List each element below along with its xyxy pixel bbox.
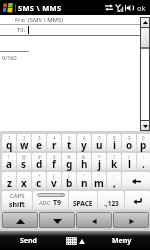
staticText: ABC xyxy=(39,199,51,207)
button[interactable]: Keyboard xyxy=(57,231,93,250)
staticText: % xyxy=(67,154,71,160)
button[interactable]: 2 xyxy=(17,134,31,152)
staticText: m xyxy=(94,176,104,190)
staticText: Til: xyxy=(17,26,26,34)
staticText: " xyxy=(83,173,85,179)
button[interactable]: Scroll up xyxy=(140,17,150,27)
staticText: # xyxy=(38,154,41,160)
staticText: 4 xyxy=(53,135,56,141)
staticText: . xyxy=(142,157,145,171)
staticText: 6 xyxy=(83,135,86,141)
button[interactable]: ) xyxy=(62,172,76,190)
button[interactable]: # xyxy=(32,153,46,171)
button[interactable]: Meny xyxy=(93,231,150,250)
button[interactable]: ! xyxy=(2,153,16,171)
button[interactable]: .,123 xyxy=(98,191,124,211)
button[interactable]: * xyxy=(92,153,106,171)
button[interactable]: ABC xyxy=(33,191,68,211)
button[interactable]: Start xyxy=(1,2,13,13)
staticText: , xyxy=(113,176,116,190)
staticText: * xyxy=(98,154,101,160)
button[interactable]: Send xyxy=(0,231,57,250)
staticText: s xyxy=(21,157,27,171)
staticText: @ xyxy=(22,154,27,160)
button[interactable]: ( xyxy=(47,172,61,190)
staticText: 5 xyxy=(68,135,71,141)
button[interactable]: @ xyxy=(17,153,31,171)
button[interactable]: right xyxy=(113,212,149,228)
button[interactable]: $ xyxy=(47,153,61,171)
button[interactable]: ok xyxy=(137,0,146,15)
button[interactable]: up xyxy=(2,212,38,228)
staticText: $ xyxy=(53,154,56,160)
staticText: : xyxy=(143,154,145,160)
staticText: h xyxy=(81,157,88,171)
staticText: k xyxy=(111,157,118,171)
staticText: SMS \ MMS xyxy=(18,3,62,13)
button[interactable]: & xyxy=(77,153,91,171)
staticText: ; xyxy=(113,173,115,179)
staticText: 0/160 xyxy=(2,54,17,61)
staticText: a xyxy=(6,157,12,171)
staticText: 0 xyxy=(142,135,145,141)
button[interactable]: 8 xyxy=(107,134,121,152)
staticText: q xyxy=(6,138,13,152)
button[interactable] xyxy=(125,191,150,211)
staticText: Meny xyxy=(112,236,132,246)
staticText: o xyxy=(126,138,133,152)
staticText: ok xyxy=(137,3,146,13)
staticText: Fra: xyxy=(15,16,26,24)
staticText: ( xyxy=(53,173,55,179)
button[interactable]: ' xyxy=(92,172,106,190)
button[interactable]: SPACE xyxy=(69,191,97,211)
staticText: e xyxy=(36,138,42,152)
staticText: T9 xyxy=(53,198,62,208)
button[interactable]: left xyxy=(76,212,112,228)
staticText: i xyxy=(113,138,116,152)
button[interactable]: - xyxy=(2,172,16,190)
staticText: 2 xyxy=(23,135,26,141)
button[interactable] xyxy=(122,172,150,190)
staticText: Send xyxy=(20,236,38,246)
button[interactable]: 0 xyxy=(137,134,150,152)
staticText: ' xyxy=(98,173,100,179)
staticText: l xyxy=(128,157,131,171)
staticText: j xyxy=(98,157,101,171)
staticText: b xyxy=(66,176,73,190)
staticText: c xyxy=(36,176,42,190)
staticText: / xyxy=(128,154,130,160)
staticText: f xyxy=(52,157,56,171)
staticText: n xyxy=(81,176,88,190)
staticText: ) xyxy=(68,173,70,179)
staticText: & xyxy=(82,154,86,160)
staticText: - xyxy=(8,173,10,179)
button[interactable]: CAPS xyxy=(2,191,32,211)
button[interactable]: + xyxy=(32,172,46,190)
staticText: w xyxy=(20,138,29,152)
button[interactable]: 5 xyxy=(62,134,76,152)
button[interactable]: ? xyxy=(107,153,121,171)
button[interactable]: / xyxy=(122,153,136,171)
staticText: y xyxy=(81,138,87,152)
button[interactable]: % xyxy=(62,153,76,171)
button[interactable]: " xyxy=(77,172,91,190)
staticText: + xyxy=(38,173,41,179)
staticText: z xyxy=(7,176,12,190)
button[interactable]: 1 xyxy=(2,134,16,152)
staticText: (SMS \ MMS) xyxy=(28,16,64,24)
button[interactable]: 4 xyxy=(47,134,61,152)
button[interactable]: down xyxy=(39,212,75,228)
staticText: _ xyxy=(23,173,25,179)
button[interactable]: 6 xyxy=(77,134,91,152)
staticText: 9 xyxy=(128,135,131,141)
button[interactable]: : xyxy=(137,153,150,171)
button[interactable]: 9 xyxy=(122,134,136,152)
staticText: u xyxy=(96,138,103,152)
staticText: .,123 xyxy=(104,199,119,208)
button[interactable]: _ xyxy=(17,172,31,190)
staticText: d xyxy=(36,157,43,171)
button[interactable]: 7 xyxy=(92,134,106,152)
button[interactable]: ; xyxy=(107,172,121,190)
button[interactable]: Scroll down xyxy=(140,121,150,131)
button[interactable]: 3 xyxy=(32,134,46,152)
